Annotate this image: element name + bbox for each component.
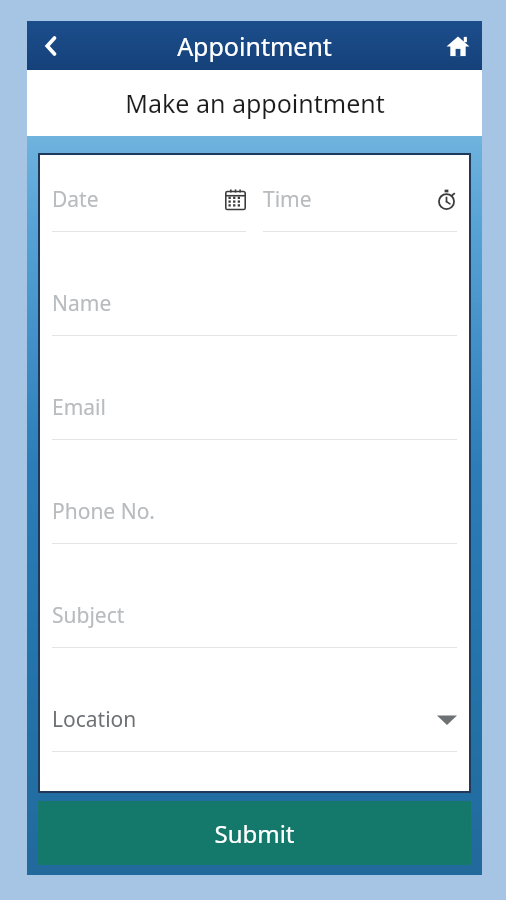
staticText: Submit (214, 817, 295, 850)
staticText: Date (52, 185, 225, 214)
button[interactable]: Submit (38, 801, 471, 865)
button[interactable]: Email (52, 393, 457, 440)
button[interactable]: Location (52, 705, 457, 752)
staticText: Email (52, 393, 106, 422)
button[interactable]: Phone No. (52, 497, 457, 544)
staticText: Subject (52, 601, 125, 630)
button[interactable]: Date (52, 185, 246, 232)
button[interactable]: Home (434, 22, 482, 70)
staticText: Make an appointment (125, 86, 385, 120)
staticText: Location (52, 705, 437, 734)
staticText: Time (263, 185, 436, 214)
button[interactable]: Time (263, 185, 457, 232)
button[interactable]: Back (27, 22, 75, 70)
staticText: Phone No. (52, 497, 155, 526)
button[interactable]: Name (52, 289, 457, 336)
button[interactable]: Subject (52, 601, 457, 648)
staticText: Name (52, 289, 112, 318)
staticText: Appointment (177, 29, 332, 63)
